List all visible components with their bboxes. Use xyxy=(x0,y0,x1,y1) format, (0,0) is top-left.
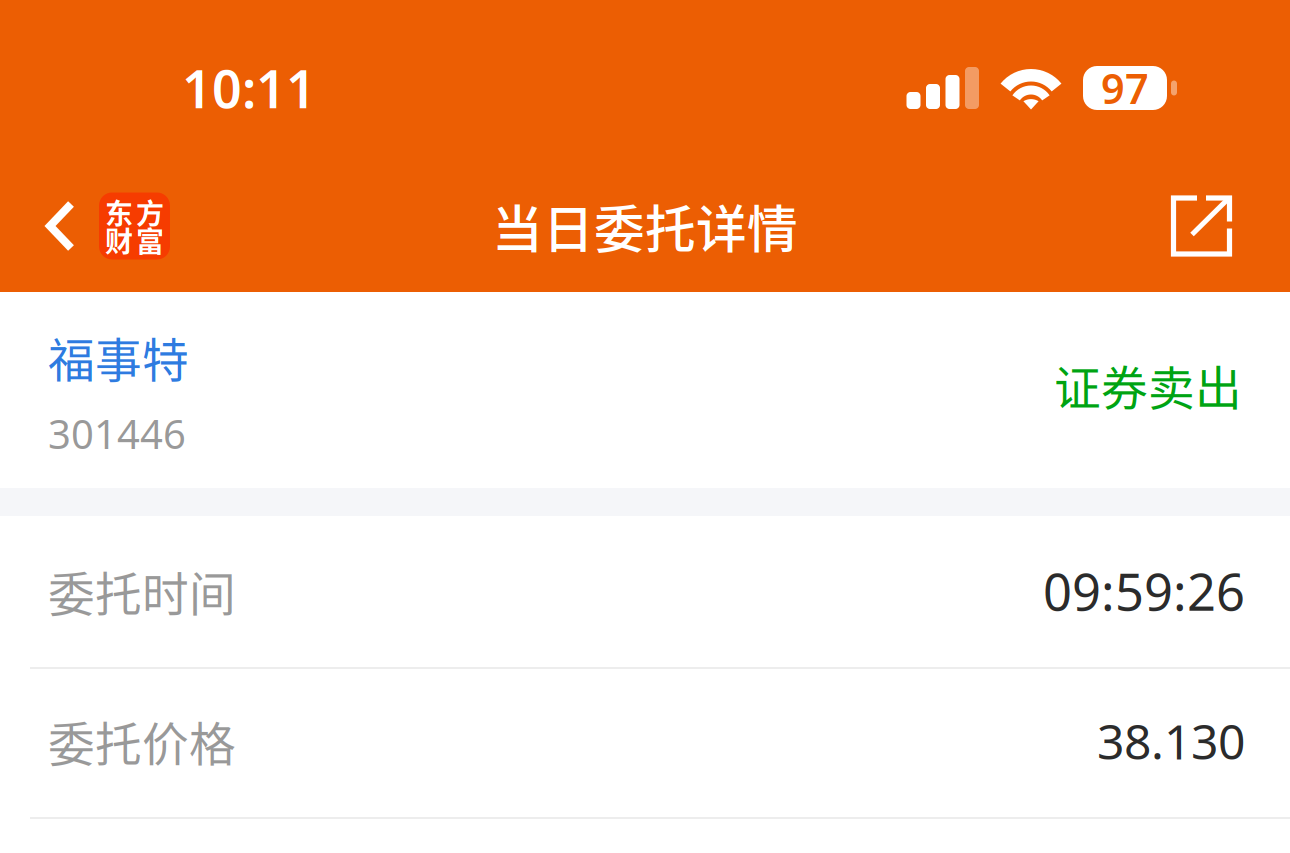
staticText: 方 xyxy=(136,192,164,232)
button[interactable]: 委托时间 xyxy=(0,519,1290,669)
staticText: 东 xyxy=(105,192,133,232)
staticText: 证券卖出 xyxy=(1054,351,1242,419)
staticText: 09:59:26 xyxy=(1043,557,1245,625)
staticText: 38.130 xyxy=(1097,709,1245,773)
button[interactable]: 福事特 xyxy=(0,292,1290,488)
staticText: 97 xyxy=(1101,61,1149,115)
staticText: 301446 xyxy=(48,407,186,460)
staticText: 财 xyxy=(105,220,133,260)
staticText: 10:11 xyxy=(182,53,316,123)
staticText: 富 xyxy=(136,220,164,260)
staticText: 福事特 xyxy=(48,323,189,391)
button[interactable]: Back xyxy=(0,156,190,296)
button[interactable]: Share xyxy=(1150,156,1290,296)
staticText: 委托时间 xyxy=(48,557,236,625)
button[interactable]: 委托价格 xyxy=(0,669,1290,819)
staticText: 当日委托详情 xyxy=(492,189,798,263)
staticText: 委托价格 xyxy=(48,707,236,775)
